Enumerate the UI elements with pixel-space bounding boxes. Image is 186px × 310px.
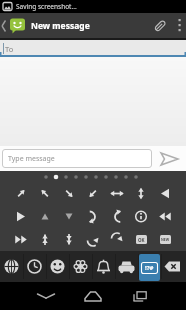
staticText: NEW [161,237,170,242]
button[interactable]: OK [129,228,153,251]
button[interactable]: !?# [138,251,161,282]
staticText: Type message [8,154,55,164]
button[interactable]: Type message [2,149,152,168]
button[interactable] [153,205,177,228]
button[interactable] [33,205,57,228]
button[interactable] [148,13,172,38]
button[interactable] [81,205,105,228]
button[interactable]: New message [0,13,90,38]
button[interactable] [92,251,115,282]
button[interactable] [81,228,105,251]
button[interactable] [81,182,105,205]
button[interactable] [129,205,153,228]
button[interactable] [105,228,129,251]
button[interactable] [153,182,177,205]
button[interactable] [57,182,81,205]
button[interactable] [23,251,46,282]
staticText: Saving screenshot... [16,2,77,11]
button[interactable] [46,251,69,282]
button[interactable] [22,282,70,310]
button[interactable] [115,251,138,282]
button[interactable] [105,182,129,205]
button[interactable] [0,251,23,282]
staticText: To [5,44,14,54]
button[interactable] [129,182,153,205]
button[interactable] [9,205,33,228]
staticText: New message [31,20,90,32]
button[interactable] [57,205,81,228]
button[interactable] [70,282,116,310]
button[interactable]: NEW [153,228,177,251]
button[interactable] [105,205,129,228]
button[interactable] [33,182,57,205]
button[interactable] [9,228,33,251]
button[interactable] [57,228,81,251]
button[interactable]: To [0,40,186,57]
button[interactable] [172,13,186,38]
staticText: OK [138,237,145,243]
staticText: !?# [145,264,154,272]
button[interactable] [9,182,33,205]
button[interactable] [33,228,57,251]
button[interactable] [161,251,184,282]
button[interactable] [116,282,164,310]
button[interactable] [69,251,92,282]
button[interactable] [152,146,186,171]
